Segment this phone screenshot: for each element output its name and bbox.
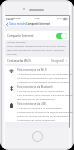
other: Bluetooth — [10, 86, 13, 91]
button[interactable]: Contraseña Wi-Fi — [5, 57, 69, 64]
staticText: Compartir Internet — [26, 22, 51, 26]
other: USB — [10, 103, 13, 108]
button[interactable]: Datos móviles — [5, 22, 28, 26]
staticText: 1 Selecciona «iPhone de Ana» en los ajus… — [17, 72, 72, 75]
button[interactable]: Compartir Internet — [5, 31, 69, 40]
staticText: 2 Selecciona el iPhone en la lista de se… — [17, 110, 73, 113]
staticText: Wi-Fi de tu computadora u otro dispositi… — [17, 76, 68, 79]
staticText: Para conectarse vía USB — [17, 102, 46, 105]
staticText: se a ella. — [7, 52, 18, 55]
other: Wi-Fi — [9, 69, 14, 73]
staticText: 78 % — [57, 17, 62, 20]
button[interactable]: USB — [5, 100, 69, 122]
staticText: Movistar — [12, 17, 21, 20]
button[interactable]: Bluetooth — [5, 83, 69, 100]
staticText: Compartir Internet — [7, 34, 34, 38]
staticText: 3 Desactiva las otras conexiones. — [17, 118, 56, 121]
staticText: Para conectarse vía Bluetooth — [17, 85, 53, 88]
staticText: Otros usuarios pueden buscar la red Wi-F… — [7, 44, 67, 47]
staticText: red en los ajustes de red de la computad… — [17, 114, 70, 117]
staticText: 11:45 — [34, 17, 40, 20]
staticText: Contraseña Wi-Fi — [7, 59, 31, 63]
staticText: 1 Conecta el iPhone a tu computadora. — [17, 106, 63, 109]
staticText: 1 Vincula el iPhone con tu computadora. — [17, 89, 65, 92]
staticText: Para conectarse vía Wi-Fi — [17, 68, 47, 71]
staticText: que aparece en la computadora. — [17, 97, 55, 100]
staticText: Ya está activado. — [7, 40, 27, 43]
staticText: Designed1 — [51, 59, 65, 63]
button[interactable]: Wi-Fi — [5, 66, 69, 83]
staticText: 2 Introduce la contraseña cuando se soli… — [17, 80, 70, 83]
staticText: Datos móviles — [9, 22, 27, 26]
staticText: 2 En el iPhone, toca Vincular o escribe … — [17, 93, 73, 96]
staticText: tida cuyo nombre es «iPhone de Ana» y co… — [7, 48, 65, 51]
